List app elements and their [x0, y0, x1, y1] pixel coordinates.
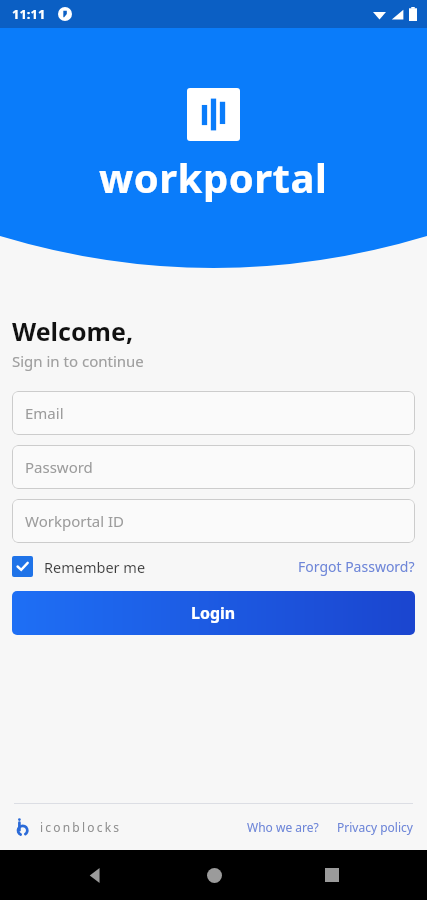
button[interactable]: Back: [72, 852, 118, 898]
staticText: Workportal ID: [25, 511, 125, 531]
staticText: Welcome,: [12, 314, 134, 348]
staticText: 11:11: [12, 5, 46, 23]
staticText: workportal: [99, 150, 328, 204]
other: iconblocks: [14, 818, 32, 836]
staticText: iconblocks: [40, 819, 122, 835]
staticText: Privacy policy: [337, 819, 413, 835]
button[interactable]: Password: [12, 445, 415, 489]
staticText: Password: [25, 457, 93, 477]
button[interactable]: Privacy policy: [337, 819, 413, 835]
button[interactable]: Workportal ID: [12, 499, 415, 543]
staticText: Who we are?: [247, 819, 319, 835]
button[interactable]: Forgot Password?: [298, 557, 415, 576]
button[interactable]: Login: [12, 591, 415, 635]
staticText: Login: [191, 602, 236, 624]
staticText: Remember me: [44, 557, 146, 577]
staticText: Forgot Password?: [298, 557, 415, 576]
staticText: Email: [25, 403, 64, 423]
button[interactable]: Email: [12, 391, 415, 435]
button[interactable]: Recents: [309, 852, 355, 898]
button[interactable]: Remember me: [12, 556, 146, 577]
button[interactable]: Who we are?: [247, 819, 319, 835]
button[interactable]: Home: [191, 852, 237, 898]
staticText: Sign in to continue: [12, 351, 144, 371]
